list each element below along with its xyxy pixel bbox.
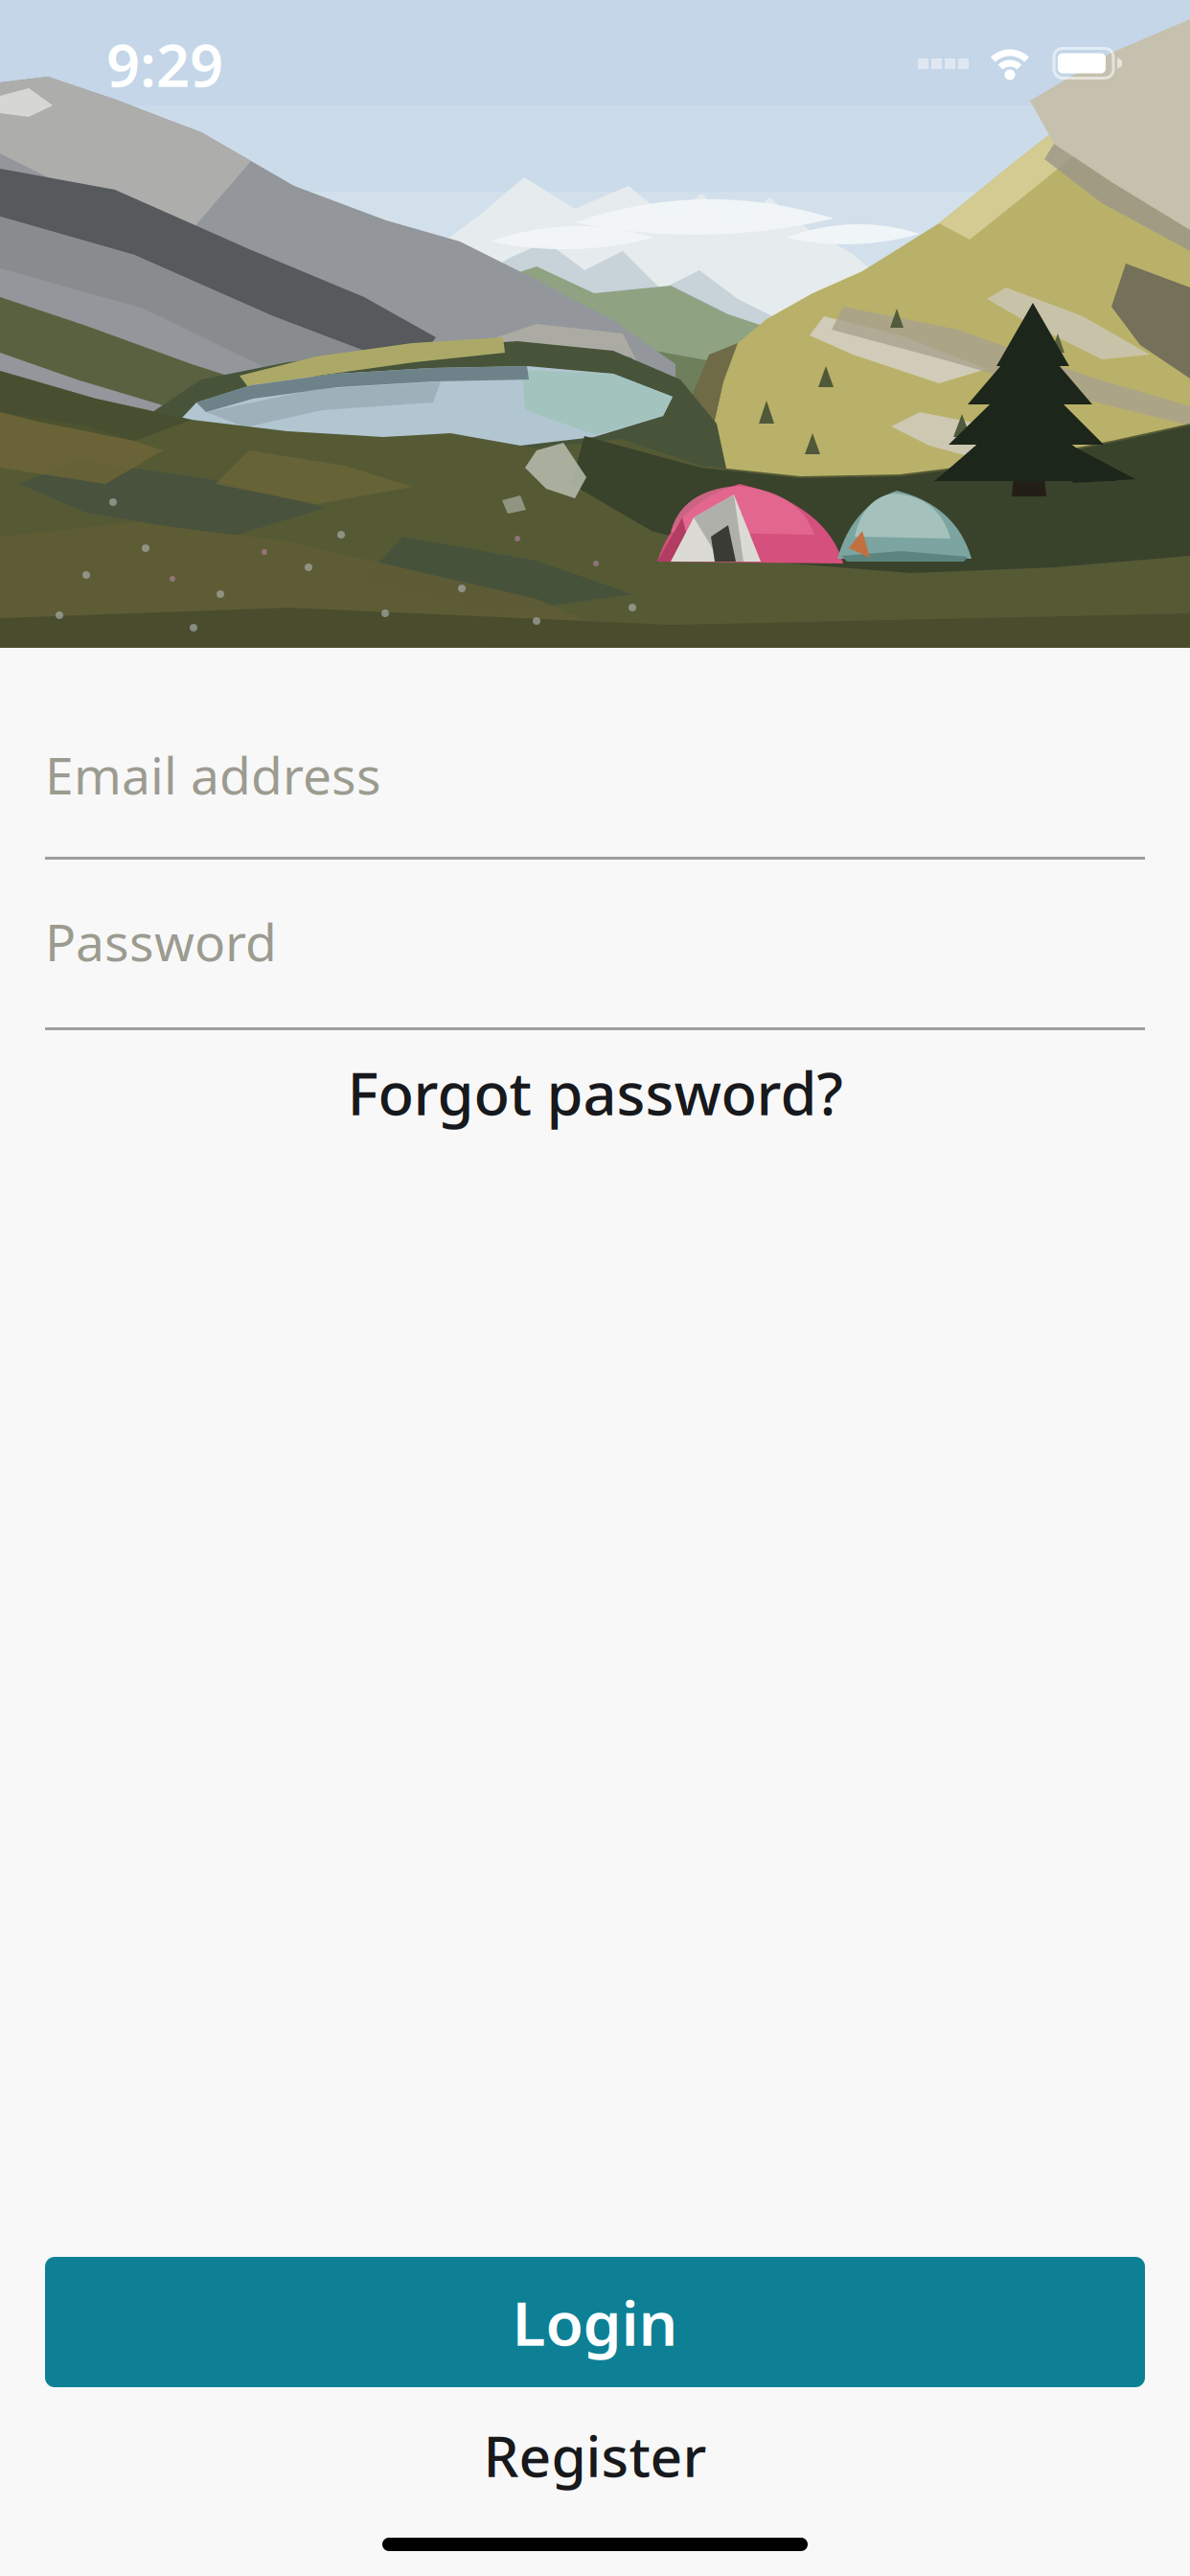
button[interactable]: Register (483, 2418, 707, 2493)
staticText: Email address (45, 741, 381, 809)
staticText: Login (512, 2281, 678, 2363)
button[interactable]: Password (45, 923, 1145, 1030)
staticText: Register (483, 2418, 707, 2493)
button[interactable]: Forgot password? (347, 1053, 843, 1132)
textField[interactable]: Email address (45, 741, 1145, 809)
staticText: Forgot password? (347, 1053, 843, 1132)
staticText: 9:29 (106, 25, 223, 103)
staticText: Password (45, 908, 277, 975)
button[interactable]: Email address (45, 752, 1145, 860)
button[interactable]: Login (45, 2257, 1145, 2387)
textField[interactable]: Password (45, 908, 1145, 975)
